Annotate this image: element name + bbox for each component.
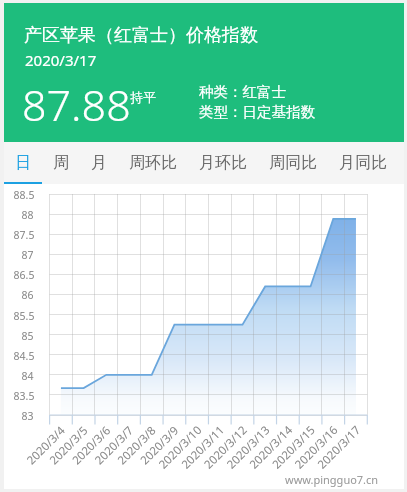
staticText: 持平 [130, 89, 156, 105]
staticText: 种类：红富士 [199, 83, 286, 101]
staticText: 类型：日定基指数 [199, 103, 315, 121]
button[interactable]: 周环比 [118, 142, 188, 184]
staticText: 2020/3/17 [25, 50, 97, 70]
button[interactable]: 日 [4, 142, 42, 184]
staticText: 月环比 [199, 153, 247, 173]
staticText: 月同比 [339, 153, 387, 173]
staticText: 产区苹果（红富士）价格指数 [24, 24, 258, 47]
button[interactable]: 月 [80, 142, 118, 184]
staticText: 87.88 [22, 75, 131, 134]
staticText: 周 [53, 153, 69, 173]
button[interactable]: 月环比 [188, 142, 258, 184]
button[interactable]: 周 [42, 142, 80, 184]
staticText: 月 [91, 153, 107, 173]
button[interactable]: 周同比 [258, 142, 328, 184]
staticText: 日 [15, 153, 31, 173]
staticText: 周环比 [129, 153, 177, 173]
button[interactable]: 月同比 [328, 142, 398, 184]
staticText: 周同比 [269, 153, 317, 173]
